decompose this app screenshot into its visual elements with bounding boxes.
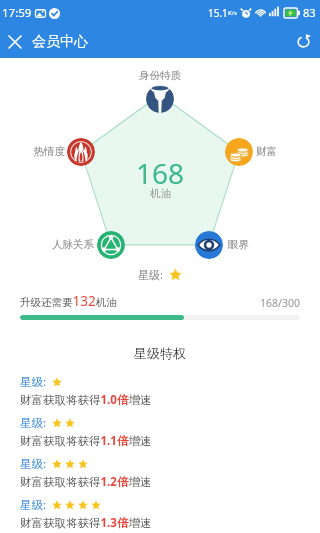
- button[interactable]: Refresh: [286, 25, 320, 58]
- staticText: 星级特权: [0, 345, 320, 361]
- staticText: 星级:: [20, 374, 47, 390]
- staticText: 财富获取将获得1.1倍增速: [20, 433, 152, 449]
- button[interactable]: 星级:: [0, 412, 320, 452]
- staticText: K/s: [228, 9, 237, 17]
- staticText: 168: [136, 154, 185, 192]
- button[interactable]: 星级:: [0, 494, 320, 533]
- staticText: 83: [303, 5, 316, 20]
- staticText: 财富: [256, 145, 277, 158]
- button[interactable]: 财富: [225, 138, 253, 166]
- staticText: 财富获取将获得1.0倍增速: [20, 392, 152, 408]
- button[interactable]: 星级:: [0, 371, 320, 411]
- staticText: 升级还需要132机油: [20, 292, 117, 310]
- button[interactable]: Close: [0, 25, 30, 58]
- staticText: 17:59: [2, 5, 32, 21]
- staticText: 财富获取将获得1.3倍增速: [20, 515, 152, 530]
- staticText: 星级:: [138, 267, 163, 282]
- button[interactable]: 人脉关系: [97, 231, 125, 259]
- staticText: 人脉关系: [46, 238, 94, 251]
- staticText: 身份特质: [128, 69, 192, 82]
- staticText: 168/300: [260, 296, 300, 310]
- button[interactable]: 眼界: [195, 231, 223, 259]
- staticText: 星级:: [20, 415, 47, 431]
- staticText: 机油: [150, 187, 171, 200]
- staticText: 热情度: [25, 145, 65, 158]
- staticText: 星级:: [20, 497, 47, 513]
- button[interactable]: 星级:: [0, 453, 320, 493]
- staticText: 会员中心: [32, 33, 88, 51]
- button[interactable]: 热情度: [67, 138, 95, 166]
- staticText: 眼界: [228, 238, 249, 251]
- button[interactable]: 身份特质: [146, 85, 174, 113]
- staticText: 财富获取将获得1.2倍增速: [20, 474, 152, 490]
- staticText: 15.1: [208, 6, 228, 20]
- staticText: 星级:: [20, 456, 47, 472]
